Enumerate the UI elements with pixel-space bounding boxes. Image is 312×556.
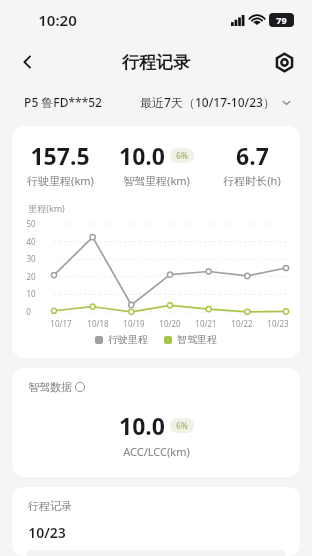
staticText: 50 <box>26 218 36 228</box>
staticText: 行程时长(h) <box>223 173 281 188</box>
staticText: 157.5 <box>30 140 90 171</box>
staticText: 10/23 <box>267 318 289 329</box>
staticText: 10/22 <box>231 318 253 329</box>
staticText: 10.0 <box>119 140 165 171</box>
button[interactable]: Back <box>8 42 48 82</box>
staticText: 行程记录 <box>122 52 190 73</box>
staticText: ACC/LCC(km) <box>123 444 190 459</box>
staticText: 79 <box>276 14 287 26</box>
staticText: 10 <box>26 288 36 298</box>
staticText: 10.0 <box>119 410 165 441</box>
staticText: 10/18 <box>87 318 109 329</box>
button[interactable]: Settings <box>264 42 304 82</box>
staticText: 0 <box>26 306 31 316</box>
staticText: 6% <box>176 420 188 431</box>
staticText: 6% <box>176 150 188 161</box>
staticText: 10/20 <box>159 318 181 329</box>
staticText: 10/23 <box>28 523 66 542</box>
button[interactable]: P5 鲁FD***52 <box>22 90 104 114</box>
staticText: 智驾数据 <box>28 380 72 394</box>
staticText: 最近7天（10/17-10/23） <box>140 94 275 110</box>
staticText: P5 鲁FD***52 <box>24 94 102 110</box>
staticText: 6.7 <box>236 140 269 171</box>
staticText: 40 <box>26 236 36 246</box>
staticText: 行驶里程 <box>108 333 148 346</box>
staticText: 智驾里程 <box>177 333 217 346</box>
staticText: 智驾里程(km) <box>123 173 190 188</box>
button[interactable]: 最近7天（10/17-10/23） <box>136 90 296 114</box>
staticText: 10/17 <box>50 318 72 329</box>
staticText: 20 <box>26 271 36 281</box>
staticText: 10:20 <box>38 10 77 30</box>
staticText: 行驶里程(km) <box>27 173 94 188</box>
staticText: 10/21 <box>195 318 217 329</box>
staticText: 行程记录 <box>28 499 72 513</box>
staticText: 10/19 <box>123 318 145 329</box>
staticText: 30 <box>26 253 36 263</box>
staticText: 里程(km) <box>28 202 65 214</box>
